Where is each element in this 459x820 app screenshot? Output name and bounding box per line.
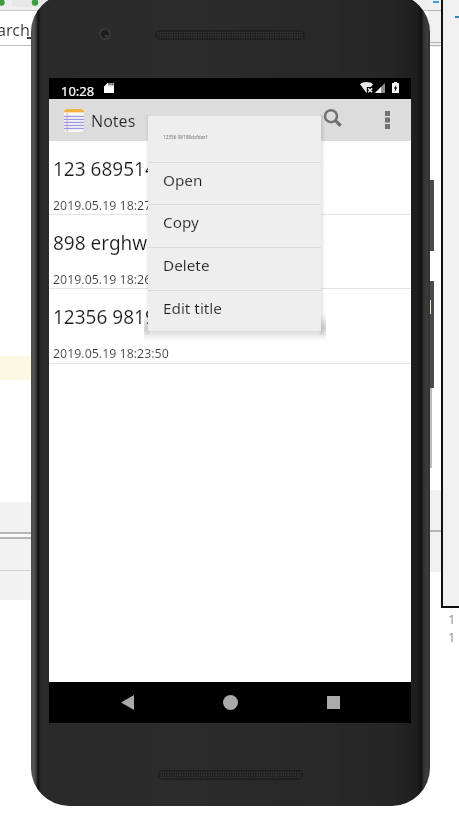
staticText: 10:28 — [61, 82, 95, 100]
button[interactable]: Copy — [148, 204, 321, 247]
button[interactable]: Delete — [148, 247, 321, 290]
staticText: Delete — [163, 255, 210, 276]
staticText: 12356 98198dsfdasf — [163, 134, 208, 140]
staticText: 2019.05.19 18:26:41 — [53, 271, 169, 288]
staticText: Notes — [91, 110, 136, 132]
staticText: Open — [163, 170, 203, 191]
button[interactable]: Home — [205, 682, 255, 723]
button[interactable]: Back — [102, 682, 152, 723]
button[interactable]: Recents — [308, 682, 358, 723]
button[interactable]: New note — [268, 99, 308, 141]
staticText: 1 — [448, 610, 456, 628]
button[interactable]: 898 erghwiethwe — [49, 215, 411, 289]
staticText: 2019.05.19 18:27:12 — [53, 197, 169, 214]
button[interactable]: 123 68951468fdsa — [49, 141, 411, 215]
button[interactable]: 12356 98198dsfdasf — [49, 289, 411, 364]
staticText: 1 — [448, 628, 456, 646]
button[interactable]: Search — [314, 99, 354, 141]
staticText: 12356 98198dsfdasf — [53, 304, 232, 330]
staticText: 2019.05.19 18:23:50 — [53, 345, 169, 362]
button[interactable]: Open — [148, 162, 321, 204]
staticText: 898 erghwiethwe — [53, 230, 208, 256]
staticText: 123 68951468fdsa — [53, 156, 216, 182]
staticText: Copy — [163, 212, 199, 233]
staticText: Edit title — [163, 298, 222, 319]
staticText: arch_k — [0, 19, 46, 41]
button[interactable]: More options — [369, 99, 405, 141]
button[interactable]: Edit title — [148, 290, 321, 331]
